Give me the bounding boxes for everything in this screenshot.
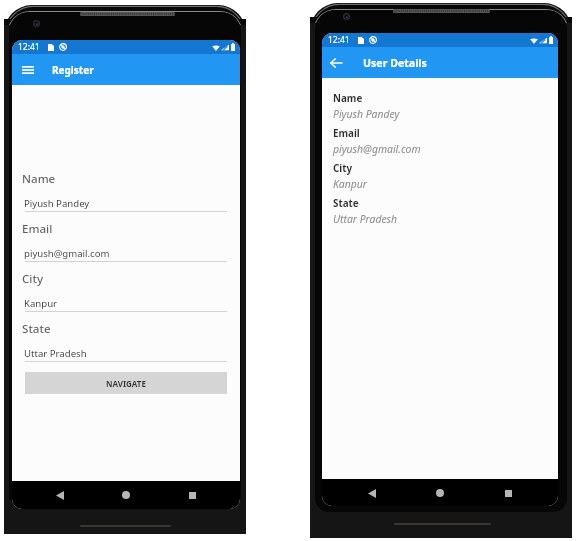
staticText: City — [333, 162, 353, 175]
staticText: piyush@gmail.com — [333, 142, 421, 156]
button[interactable]: Recent apps — [497, 482, 519, 504]
button[interactable]: NAVIGATE — [25, 372, 227, 394]
staticText: piyush@gmail.com — [24, 247, 110, 260]
button[interactable]: Home — [115, 484, 137, 506]
button[interactable]: Back — [322, 47, 350, 78]
staticText: Name — [333, 92, 363, 105]
staticText: 12:41 — [328, 34, 350, 46]
button[interactable]: Recent apps — [181, 484, 203, 506]
staticText: Register — [52, 63, 94, 77]
staticText: 12:41 — [18, 41, 40, 53]
staticText: Email — [22, 221, 53, 237]
staticText: Piyush Pandey — [333, 107, 400, 121]
staticText: Uttar Pradesh — [333, 212, 398, 226]
staticText: City — [22, 271, 44, 287]
staticText: State — [333, 197, 359, 210]
button[interactable]: Menu — [12, 54, 43, 85]
staticText: Name — [22, 171, 56, 187]
staticText: Piyush Pandey — [24, 197, 90, 210]
staticText: Kanpur — [24, 297, 58, 310]
staticText: Email — [333, 127, 360, 140]
button[interactable]: Back — [361, 482, 383, 504]
staticText: Uttar Pradesh — [24, 347, 87, 360]
staticText: NAVIGATE — [106, 378, 146, 389]
staticText: User Details — [363, 56, 427, 70]
button[interactable]: Back — [49, 484, 71, 506]
button[interactable]: Home — [429, 482, 451, 504]
staticText: State — [22, 321, 51, 337]
staticText: Kanpur — [333, 177, 367, 191]
